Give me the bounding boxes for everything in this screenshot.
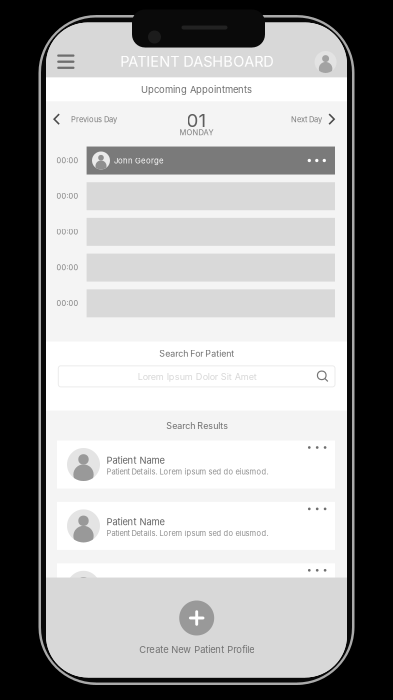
staticText: 00:00 — [56, 299, 78, 308]
staticText: Next Day — [291, 115, 322, 124]
staticText: Patient Name — [107, 516, 165, 527]
staticText: 00:00 — [56, 227, 78, 236]
staticText: John George — [114, 156, 164, 165]
button[interactable]: Create New Patient Profile — [127, 599, 267, 661]
staticText: Previous Day — [71, 115, 117, 124]
staticText: Patient Details. Lorem ipsum sed do eius… — [107, 529, 269, 538]
staticText: PATIENT DASHBOARD — [120, 53, 273, 70]
button[interactable]: Menu — [49, 46, 83, 78]
staticText: Search For Patient — [159, 348, 234, 359]
staticText: 00:00 — [56, 192, 78, 201]
button[interactable]: Appointment with John George — [87, 146, 335, 174]
button[interactable]: Previous Day — [49, 106, 125, 132]
staticText: 00:00 — [56, 156, 78, 165]
staticText: MONDAY — [179, 128, 213, 137]
button[interactable]: Next Day — [286, 106, 342, 132]
staticText: Patient Name — [107, 455, 165, 466]
button[interactable]: Profile — [311, 47, 341, 77]
button[interactable]: Patient Name — [57, 440, 335, 488]
staticText: 00:00 — [56, 263, 78, 272]
button[interactable]: Patient Name — [57, 563, 335, 611]
staticText: Search Results — [166, 420, 228, 431]
button[interactable]: Patient Name — [57, 502, 335, 550]
button[interactable]: Search for patient — [58, 366, 335, 387]
staticText: Patient Details. Lorem ipsum sed do eius… — [107, 467, 269, 476]
staticText: 01 — [186, 109, 206, 131]
staticText: Lorem Ipsum Dolor Sit Amet — [138, 371, 257, 382]
staticText: Upcoming Appointments — [141, 84, 252, 95]
staticText: Create New Patient Profile — [139, 644, 254, 655]
